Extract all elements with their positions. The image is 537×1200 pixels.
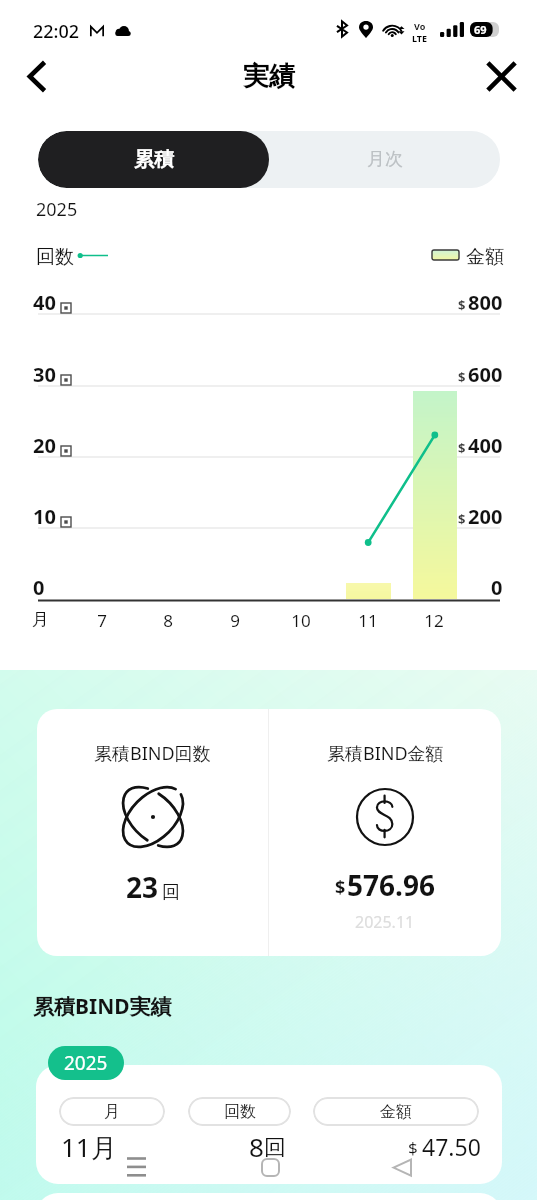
staticText: 0 — [491, 574, 503, 601]
button[interactable]: 累積 — [38, 131, 269, 188]
staticText: 累積BIND金額 — [327, 741, 444, 766]
staticText: 累積BIND回数 — [94, 741, 211, 766]
staticText: 回数 — [36, 245, 74, 269]
staticText: 11月 — [61, 1129, 117, 1165]
staticText: 22:02 — [33, 19, 80, 44]
staticText: 576.96 — [347, 866, 435, 904]
staticText: 回 — [264, 1134, 286, 1162]
staticText: 7 — [97, 609, 107, 632]
staticText: 600 — [468, 361, 503, 388]
staticText: LTE — [412, 32, 428, 44]
staticText: $ — [458, 439, 466, 457]
staticText: 200 — [468, 503, 503, 530]
button[interactable]: 月 — [59, 1097, 165, 1126]
staticText: 月次 — [367, 148, 403, 171]
staticText: 8 — [163, 609, 173, 632]
staticText: 40 — [33, 289, 56, 316]
staticText: 2025 — [64, 1050, 108, 1076]
staticText: $ — [458, 510, 466, 528]
button[interactable]: 累積BIND金額 — [269, 709, 501, 956]
staticText: 月 — [104, 1102, 120, 1122]
button[interactable]: Back — [14, 53, 60, 99]
button[interactable]: 月 — [36, 1065, 502, 1184]
button[interactable]: Close — [478, 53, 524, 99]
staticText: 47.50 — [422, 1131, 481, 1162]
staticText: 400 — [468, 432, 503, 459]
button[interactable]: 月次 — [269, 131, 500, 188]
staticText: 0 — [33, 574, 45, 601]
staticText: $ — [458, 296, 466, 314]
staticText: $ — [458, 368, 466, 386]
button[interactable]: 累積BIND回数 — [37, 709, 268, 956]
staticText: 2025 — [36, 197, 78, 222]
staticText: 800 — [468, 289, 503, 316]
staticText: 10 — [291, 609, 311, 632]
staticText: $ — [408, 1136, 418, 1159]
staticText: 累積 — [134, 147, 174, 172]
staticText: 30 — [33, 361, 56, 388]
staticText: 金額 — [466, 245, 504, 269]
staticText: 回 — [162, 881, 180, 904]
staticText: 20 — [33, 432, 56, 459]
staticText: 11 — [358, 609, 378, 632]
staticText: 2025.11 — [355, 911, 415, 933]
staticText: Vo — [414, 20, 426, 32]
staticText: 8 — [249, 1129, 264, 1164]
staticText: 累積BIND実績 — [33, 992, 172, 1021]
staticText: 10 — [33, 503, 56, 530]
staticText: 9 — [230, 609, 240, 632]
staticText: 金額 — [380, 1102, 412, 1122]
staticText: 69 — [474, 22, 487, 37]
button[interactable]: 2025 — [48, 1046, 124, 1080]
staticText: 12 — [424, 609, 444, 632]
staticText: 実績 — [243, 60, 295, 93]
staticText: 月 — [32, 609, 49, 630]
staticText: $ — [335, 875, 346, 900]
staticText: 23 — [126, 868, 159, 906]
button[interactable]: 月 — [36, 1193, 502, 1200]
button[interactable]: 金額 — [313, 1097, 479, 1126]
button[interactable]: 回数 — [188, 1097, 291, 1126]
staticText: 回数 — [224, 1102, 256, 1122]
